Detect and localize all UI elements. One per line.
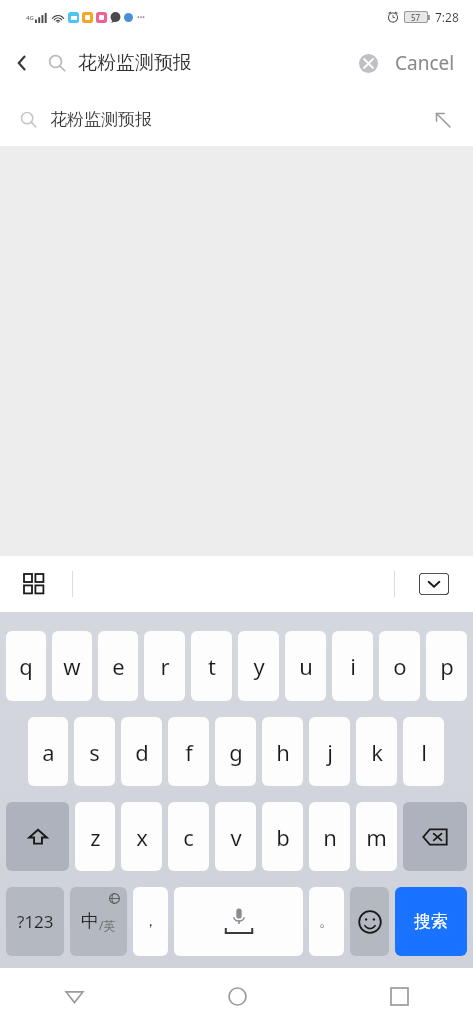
staticText: f <box>185 737 193 767</box>
staticText: 花粉监测预报 <box>50 109 152 130</box>
button[interactable]: t <box>191 631 232 701</box>
staticText: r <box>160 651 170 681</box>
staticText: v <box>230 822 242 852</box>
button[interactable]: Fill search box <box>427 104 457 134</box>
staticText: i <box>350 651 356 681</box>
button[interactable]: n <box>309 802 350 871</box>
button[interactable]: Back <box>50 972 98 1020</box>
button[interactable]: Backspace <box>403 802 467 871</box>
staticText: a <box>42 737 55 767</box>
button[interactable]: ， <box>133 887 168 956</box>
button[interactable]: o <box>379 631 420 701</box>
staticText: t <box>208 651 216 681</box>
button[interactable]: g <box>215 717 256 786</box>
staticText: d <box>135 737 149 767</box>
button[interactable]: Hide keyboard <box>411 561 457 607</box>
staticText: l <box>421 737 427 767</box>
button[interactable]: Cancel <box>391 44 459 82</box>
button[interactable]: Back <box>0 41 44 85</box>
staticText: k <box>371 737 383 767</box>
staticText: 7:28 <box>435 9 459 25</box>
button[interactable]: ?123 <box>6 887 64 956</box>
staticText: z <box>90 822 101 852</box>
staticText: ••• <box>137 13 145 23</box>
button[interactable]: v <box>215 802 256 871</box>
button[interactable]: s <box>74 717 115 786</box>
button[interactable]: m <box>356 802 397 871</box>
staticText: p <box>440 651 454 681</box>
staticText: e <box>112 651 125 681</box>
button[interactable]: f <box>168 717 209 786</box>
button[interactable]: 花粉监测预报 <box>0 92 473 146</box>
staticText: w <box>63 651 81 681</box>
staticText: ?123 <box>17 910 54 933</box>
button[interactable]: Space <box>174 887 303 956</box>
button[interactable]: l <box>403 717 444 786</box>
button[interactable]: c <box>168 802 209 871</box>
staticText: 。 <box>319 912 334 931</box>
button[interactable]: 搜索 <box>395 887 467 956</box>
button[interactable]: Home <box>213 972 261 1020</box>
staticText: u <box>299 651 313 681</box>
staticText: /英 <box>99 917 116 933</box>
button[interactable]: z <box>75 802 115 871</box>
staticText: 4G <box>26 14 34 22</box>
button[interactable]: a <box>28 717 68 786</box>
button[interactable]: Recent apps <box>375 972 423 1020</box>
staticText: Cancel <box>395 50 455 76</box>
button[interactable]: 中 <box>70 887 127 956</box>
button[interactable]: p <box>426 631 467 701</box>
button[interactable]: h <box>262 717 303 786</box>
staticText: 中 <box>81 910 99 933</box>
staticText: ， <box>143 912 158 931</box>
button[interactable]: w <box>52 631 92 701</box>
staticText: c <box>183 822 194 852</box>
button[interactable]: i <box>332 631 373 701</box>
staticText: y <box>253 651 265 681</box>
button[interactable]: d <box>121 717 162 786</box>
button[interactable]: j <box>309 717 350 786</box>
button[interactable]: r <box>144 631 185 701</box>
button[interactable]: u <box>285 631 326 701</box>
button[interactable]: Clear text <box>351 46 385 80</box>
staticText: 花粉监测预报 <box>78 51 192 75</box>
staticText: q <box>19 651 33 681</box>
staticText: h <box>276 737 290 767</box>
button[interactable]: x <box>121 802 162 871</box>
staticText: j <box>327 737 333 767</box>
staticText: 57 <box>411 12 421 22</box>
button[interactable]: Emoji <box>350 887 389 956</box>
staticText: n <box>323 822 337 852</box>
button[interactable]: y <box>238 631 279 701</box>
staticText: b <box>276 822 290 852</box>
button[interactable]: b <box>262 802 303 871</box>
button[interactable]: q <box>6 631 46 701</box>
staticText: o <box>393 651 407 681</box>
staticText: 搜索 <box>414 911 448 932</box>
button[interactable]: Keyboard modes <box>14 564 54 604</box>
button[interactable]: e <box>98 631 138 701</box>
staticText: g <box>229 737 243 767</box>
staticText: x <box>136 822 148 852</box>
button[interactable]: 。 <box>309 887 344 956</box>
staticText: s <box>89 737 100 767</box>
staticText: m <box>366 822 387 852</box>
button[interactable]: Shift <box>6 802 69 871</box>
button[interactable]: k <box>356 717 397 786</box>
